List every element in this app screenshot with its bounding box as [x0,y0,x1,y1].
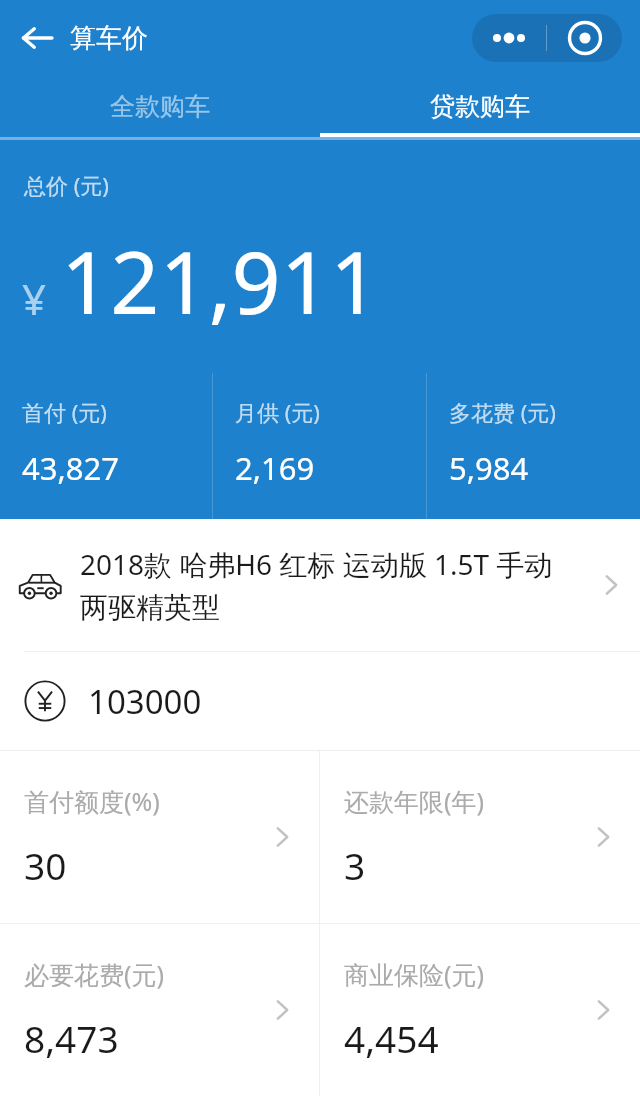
button[interactable]: 月供 (元) [213,373,426,519]
staticText: 121,911 [61,222,380,339]
staticText: ¥ [22,270,47,327]
staticText: 首付额度(%) [24,784,160,818]
staticText: 43,827 [22,447,119,489]
staticText: 必要花费(元) [24,957,165,991]
button[interactable]: Back [12,13,62,63]
staticText: 2018款 哈弗H6 红标 运动版 1.5T 手动两驱精英型 [80,545,572,626]
button[interactable]: 全款购车 [0,75,320,137]
staticText: 全款购车 [110,91,210,122]
button[interactable]: 贷款购车 [320,75,640,137]
staticText: 多花费 (元) [449,397,556,427]
staticText: 贷款购车 [430,91,530,122]
staticText: 商业保险(元) [344,957,485,991]
button[interactable]: 还款年限(年) [320,751,640,923]
staticText: 103000 [88,679,202,724]
button[interactable]: Locate [547,14,622,62]
staticText: 3 [344,840,366,890]
staticText: 8,473 [24,1013,119,1063]
button[interactable]: 103000 [0,652,640,750]
staticText: 月供 (元) [235,397,320,427]
staticText: 算车价 [70,22,148,55]
staticText: 4,454 [344,1013,439,1063]
staticText: 还款年限(年) [344,784,485,818]
button[interactable]: 2018款 哈弗H6 红标 运动版 1.5T 手动两驱精英型 [0,519,640,651]
button[interactable]: 必要花费(元) [0,924,319,1096]
staticText: 首付 (元) [22,397,107,427]
staticText: 30 [24,840,67,890]
button[interactable]: 首付额度(%) [0,751,319,923]
button[interactable]: 首付 (元) [0,373,212,519]
staticText: 总价 (元) [24,170,109,200]
button[interactable]: More options [472,14,546,62]
staticText: 2,169 [235,447,315,489]
button[interactable]: 多花费 (元) [427,373,640,519]
button[interactable]: 商业保险(元) [320,924,640,1096]
staticText: 5,984 [449,447,529,489]
